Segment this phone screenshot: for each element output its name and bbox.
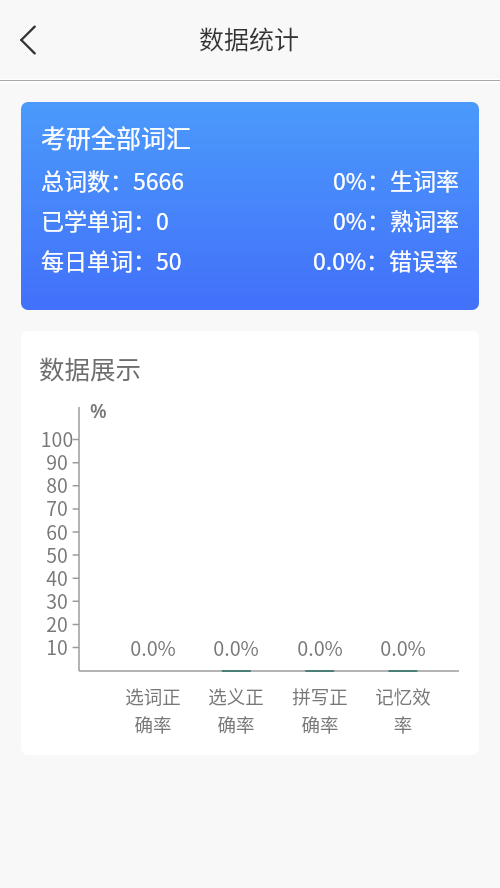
staticText: 0%：熟词率 bbox=[333, 203, 459, 236]
staticText: 70 bbox=[21, 493, 93, 521]
staticText: 100 bbox=[21, 424, 93, 452]
staticText: 40 bbox=[21, 563, 93, 591]
staticText: 90 bbox=[21, 447, 93, 475]
staticText: % bbox=[90, 398, 107, 424]
button[interactable]: 考研全部词汇 bbox=[21, 102, 479, 310]
staticText: 数据展示 bbox=[39, 349, 142, 386]
staticText: 总词数：5666 bbox=[41, 163, 185, 196]
staticText: 60 bbox=[21, 517, 93, 545]
staticText: 已学单词：0 bbox=[41, 203, 169, 236]
staticText: 0.0% bbox=[113, 633, 193, 662]
staticText: 数据统计 bbox=[199, 20, 300, 56]
button[interactable]: Back bbox=[4, 16, 52, 64]
staticText: 考研全部词汇 bbox=[41, 119, 192, 155]
staticText: 0.0%：错误率 bbox=[313, 243, 459, 276]
staticText: 10 bbox=[21, 632, 93, 660]
staticText: 每日单词：50 bbox=[41, 243, 182, 276]
staticText: 0%：生词率 bbox=[333, 163, 459, 196]
staticText: 0.0% bbox=[196, 633, 276, 662]
staticText: 选义正确率 bbox=[205, 683, 267, 737]
staticText: 拼写正确率 bbox=[289, 683, 351, 737]
staticText: 80 bbox=[21, 470, 93, 498]
staticText: 0.0% bbox=[363, 633, 443, 662]
staticText: 选词正确率 bbox=[122, 683, 184, 737]
staticText: 记忆效率 bbox=[372, 683, 434, 737]
staticText: 20 bbox=[21, 609, 93, 637]
staticText: 0.0% bbox=[280, 633, 360, 662]
staticText: 50 bbox=[21, 540, 93, 568]
staticText: 30 bbox=[21, 586, 93, 614]
